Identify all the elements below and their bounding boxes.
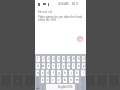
button[interactable]: 9 bbox=[77, 56, 80, 62]
staticText: 7 bbox=[68, 57, 70, 61]
staticText: r bbox=[53, 64, 55, 68]
button[interactable]: 5 bbox=[57, 56, 60, 62]
staticText: j bbox=[71, 71, 72, 75]
button[interactable]: c bbox=[51, 77, 55, 83]
staticText: w bbox=[42, 64, 45, 68]
button[interactable]: 4 bbox=[52, 56, 55, 62]
staticText: e bbox=[29, 78, 32, 83]
staticText: w bbox=[16, 78, 20, 83]
staticText: 84 % bbox=[72, 2, 79, 6]
button[interactable]: 2 bbox=[42, 56, 45, 62]
staticText: 5 bbox=[58, 57, 60, 61]
staticText: 8 bbox=[73, 57, 75, 61]
button[interactable]: 0 bbox=[82, 56, 85, 62]
staticText: !#1 bbox=[36, 86, 40, 89]
staticText: y bbox=[63, 64, 65, 68]
staticText: English (US) bbox=[58, 85, 73, 89]
button[interactable]: v bbox=[57, 77, 61, 83]
button[interactable]: f bbox=[51, 70, 55, 76]
button[interactable]: k bbox=[75, 70, 79, 76]
staticText: q bbox=[37, 64, 39, 68]
staticText: z bbox=[42, 78, 44, 82]
staticText: Video game let you take the hand bbox=[38, 15, 83, 19]
staticText: a bbox=[37, 71, 39, 75]
staticText: other for 50% bbox=[38, 18, 56, 22]
staticText: m bbox=[76, 78, 79, 82]
staticText: 4:08 AM bbox=[58, 2, 69, 6]
button[interactable]: 8 bbox=[72, 56, 75, 62]
staticText: p bbox=[83, 64, 85, 68]
staticText: s bbox=[42, 71, 44, 75]
button[interactable]: Space bbox=[46, 84, 75, 90]
staticText: r bbox=[41, 78, 43, 83]
staticText: 2 bbox=[43, 57, 45, 61]
staticText: 9 bbox=[78, 57, 80, 61]
button[interactable]: o bbox=[77, 63, 80, 69]
button[interactable]: r bbox=[52, 63, 55, 69]
staticText: h bbox=[64, 71, 66, 75]
staticText: f bbox=[53, 71, 54, 75]
button[interactable]: d bbox=[46, 70, 49, 76]
staticText: t bbox=[58, 64, 60, 68]
staticText: 4 bbox=[53, 57, 55, 61]
button[interactable]: y bbox=[62, 63, 65, 69]
button[interactable]: x bbox=[46, 77, 49, 83]
staticText: x bbox=[47, 78, 49, 82]
staticText: l bbox=[83, 71, 84, 75]
staticText: u bbox=[77, 78, 80, 83]
button[interactable]: s bbox=[41, 70, 44, 76]
button[interactable]: n bbox=[69, 77, 73, 83]
button[interactable]: 3 bbox=[47, 56, 50, 62]
button[interactable]: z bbox=[41, 77, 44, 83]
button[interactable]: a bbox=[36, 70, 39, 76]
staticText: p bbox=[113, 78, 116, 83]
staticText: v bbox=[58, 78, 60, 82]
button[interactable]: u bbox=[67, 63, 70, 69]
staticText: o bbox=[78, 64, 80, 68]
staticText: b bbox=[64, 78, 66, 82]
button[interactable]: 7 bbox=[67, 56, 70, 62]
button[interactable]: b bbox=[63, 77, 67, 83]
staticText: u bbox=[68, 64, 70, 68]
staticText: 1 bbox=[37, 57, 39, 61]
staticText: q bbox=[5, 78, 8, 83]
button[interactable]: 6 bbox=[62, 56, 65, 62]
staticText: 3 bbox=[48, 57, 50, 61]
button[interactable]: m bbox=[75, 77, 79, 83]
button[interactable]: g bbox=[57, 70, 61, 76]
staticText: e bbox=[48, 64, 50, 68]
button[interactable]: w bbox=[42, 63, 45, 69]
button[interactable]: Symbols bbox=[36, 84, 40, 90]
button[interactable]: 1 bbox=[36, 56, 40, 62]
staticText: t bbox=[53, 78, 55, 83]
staticText: n bbox=[70, 78, 72, 82]
staticText: 6 bbox=[63, 57, 65, 61]
staticText: i bbox=[73, 64, 74, 68]
button[interactable]: l bbox=[81, 70, 85, 76]
staticText: c bbox=[52, 78, 54, 82]
staticText: g bbox=[58, 71, 60, 75]
staticText: k bbox=[76, 71, 78, 75]
button[interactable]: p bbox=[82, 63, 85, 69]
button[interactable]: Contact avatar bbox=[77, 36, 83, 42]
button[interactable]: e bbox=[47, 63, 50, 69]
staticText: d bbox=[47, 71, 49, 75]
button[interactable]: t bbox=[57, 63, 60, 69]
button[interactable]: q bbox=[36, 63, 40, 69]
staticText: y bbox=[65, 78, 68, 83]
button[interactable]: h bbox=[63, 70, 67, 76]
button[interactable]: i bbox=[72, 63, 75, 69]
button[interactable]: j bbox=[69, 70, 73, 76]
staticText: 0 bbox=[83, 57, 85, 61]
staticText: Missed call bbox=[38, 10, 53, 14]
